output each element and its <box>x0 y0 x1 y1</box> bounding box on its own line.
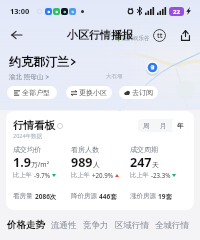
staticText: 降价房源 <box>71 192 97 200</box>
staticText: 涨价房源 <box>130 192 156 200</box>
staticText: 比上年 <box>13 171 32 179</box>
staticText: 重庆欢乐谷 <box>122 35 150 42</box>
staticText: 行情看板 <box>13 119 55 132</box>
button[interactable]: 月 <box>155 119 172 132</box>
button[interactable]: 年 <box>172 119 189 132</box>
button[interactable]: 约克郡汀兰 <box>9 54 76 69</box>
staticText: 比上年 <box>130 171 149 179</box>
staticText: 2086次 <box>35 192 57 201</box>
staticText: 人 <box>93 160 100 169</box>
staticText: 比上年 <box>71 171 90 179</box>
staticText: 去订阅 <box>132 88 153 97</box>
staticText: 看房量 <box>13 192 33 200</box>
button[interactable]: 更换小区 <box>71 86 107 99</box>
staticText: -23.3% <box>151 171 171 179</box>
staticText: 渝北 照母山 <box>9 72 44 81</box>
staticText: +20.9% <box>92 171 114 179</box>
staticText: 大石堰 <box>106 73 123 80</box>
staticText: 19套 <box>158 192 172 201</box>
button[interactable]: 全部户型 <box>14 86 50 99</box>
staticText: 更换小区 <box>79 88 107 97</box>
staticText: 约克郡汀兰 <box>9 54 69 69</box>
staticText: 月 <box>160 122 167 130</box>
staticText: 成交均价 <box>13 145 41 154</box>
button[interactable]: 价格走势 <box>7 219 45 231</box>
staticText: 全部户型 <box>22 88 50 97</box>
button[interactable]: Brand <box>153 29 166 42</box>
button[interactable]: 区域行情 <box>115 220 149 231</box>
staticText: 年 <box>177 122 184 130</box>
button[interactable]: 竞争力 <box>83 220 109 231</box>
button[interactable]: 去订阅 <box>124 86 153 99</box>
staticText: 446套 <box>99 192 117 201</box>
button[interactable]: 全城行情 <box>155 220 189 231</box>
button[interactable]: Share <box>177 27 193 43</box>
button[interactable]: 渝北 照母山 <box>9 72 49 81</box>
staticText: 万/m² <box>31 160 50 169</box>
staticText: 周 <box>143 122 150 130</box>
staticText: 看房人数 <box>71 145 99 154</box>
button[interactable]: 流通性 <box>51 220 77 231</box>
staticText: 天 <box>152 160 159 169</box>
staticText: tt <box>157 31 163 40</box>
staticText: 13:00 <box>10 6 30 16</box>
staticText: 22 <box>173 8 180 16</box>
staticText: 小区行情播报 <box>67 28 133 42</box>
staticText: -9.7% <box>34 171 51 179</box>
staticText: 989 <box>71 154 93 171</box>
button[interactable]: 周 <box>138 119 155 132</box>
staticText: 1.9 <box>13 154 31 171</box>
staticText: 247 <box>130 154 152 171</box>
staticText: 成交周期 <box>130 145 158 154</box>
button[interactable]: Back <box>6 25 26 45</box>
staticText: 2024年数据 <box>13 132 43 140</box>
